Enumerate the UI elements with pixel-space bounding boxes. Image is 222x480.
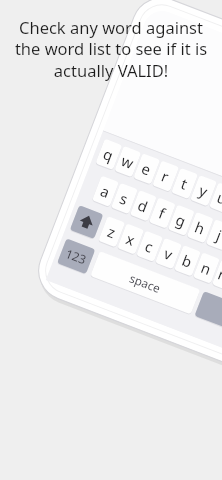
staticText: Check any word against the word list to … <box>7 16 215 82</box>
button[interactable]: Check any word against the word list to … <box>7 16 215 82</box>
